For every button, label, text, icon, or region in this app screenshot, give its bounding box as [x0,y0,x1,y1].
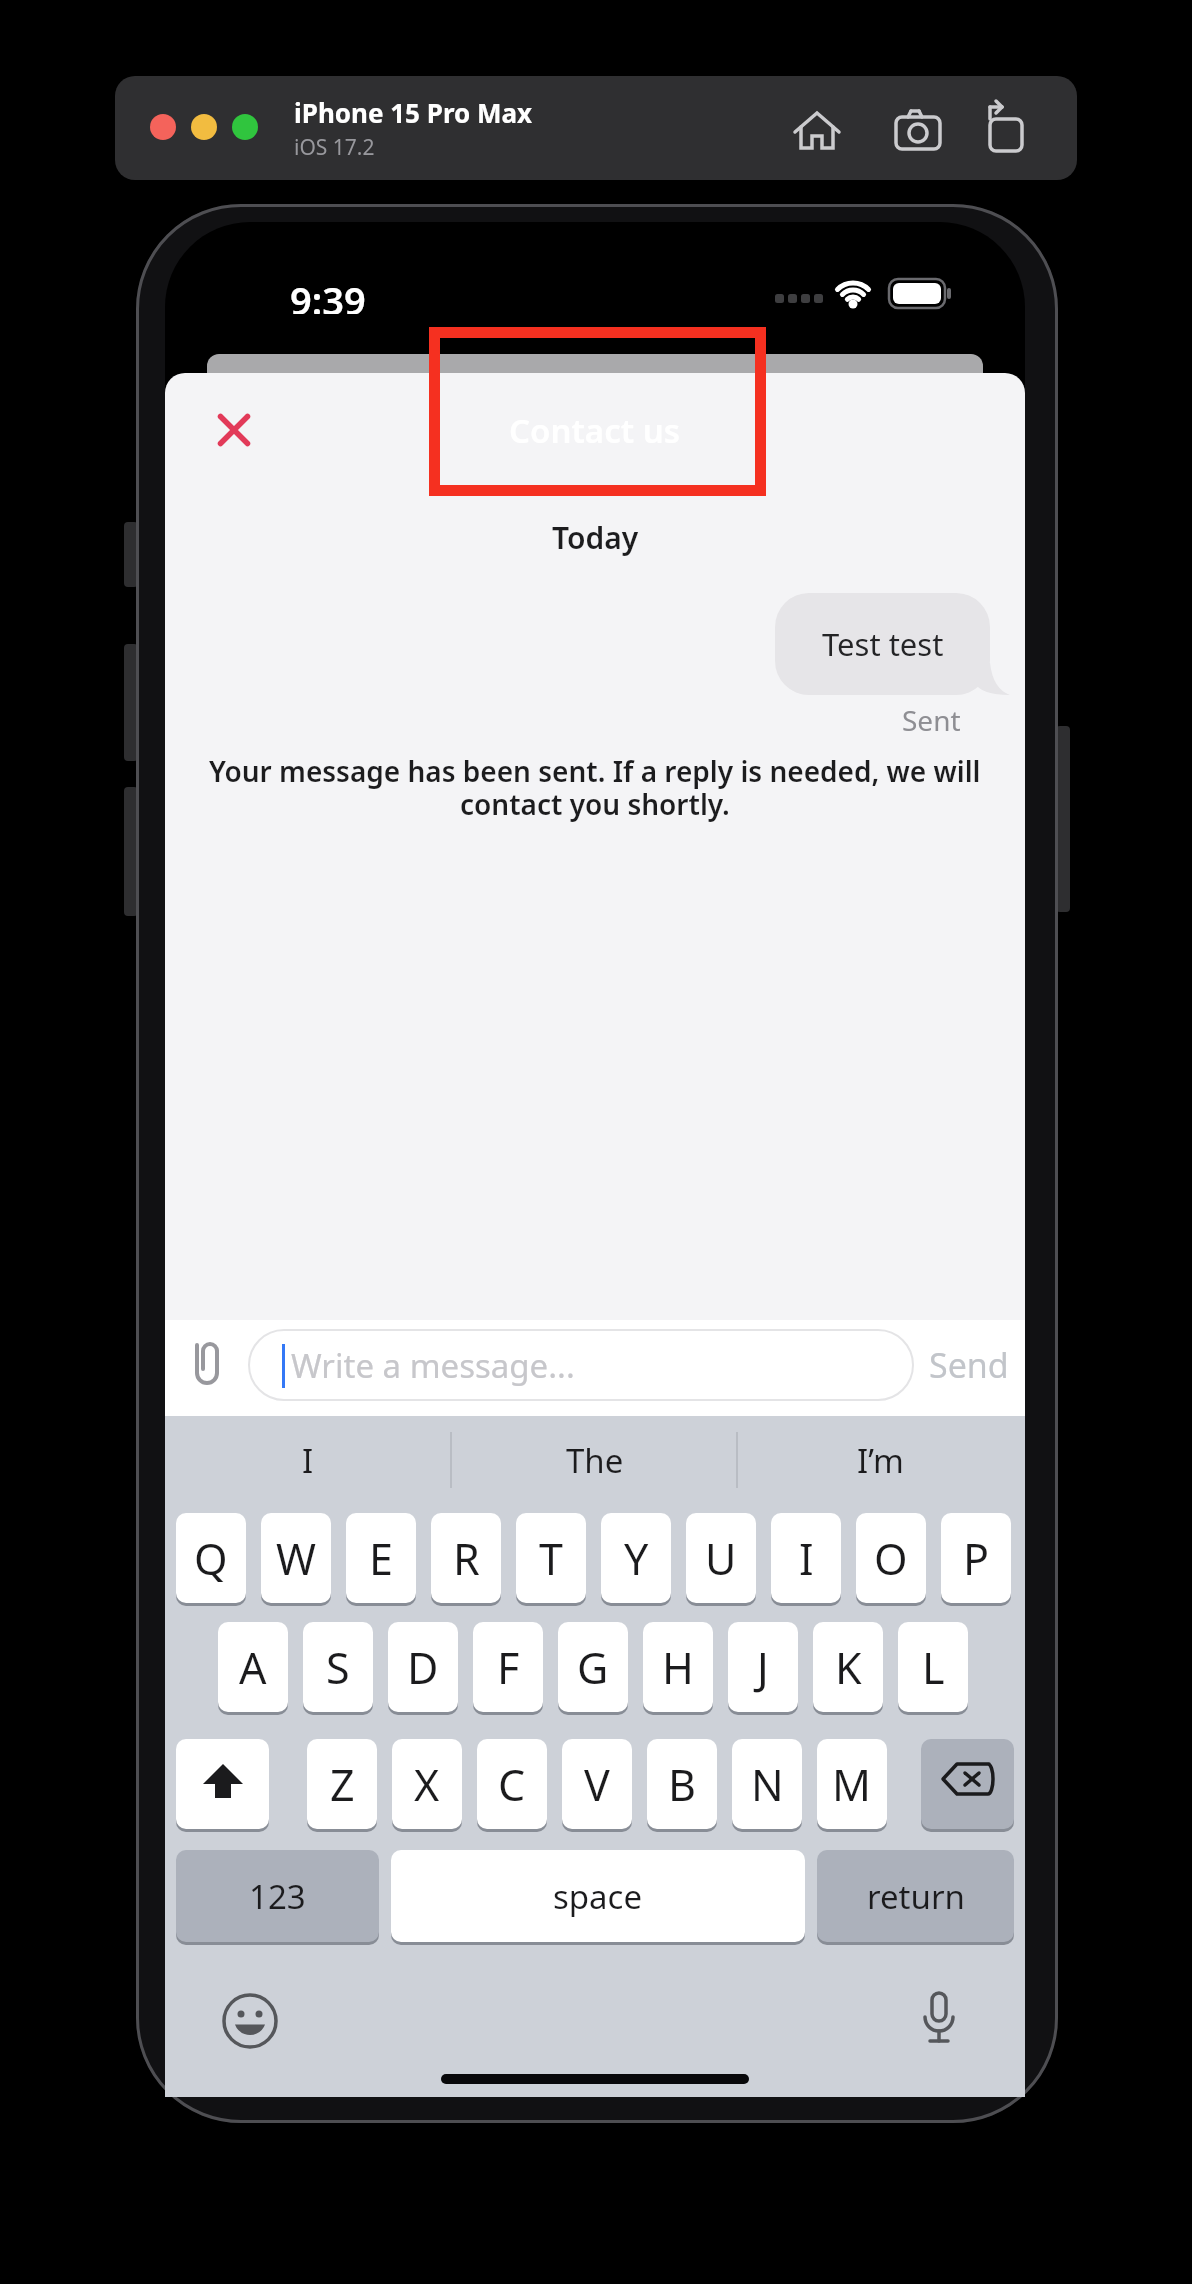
button[interactable]: 123 [176,1850,379,1942]
button[interactable]: E [346,1513,416,1603]
staticText: W [276,1529,316,1588]
staticText: F [497,1638,520,1697]
staticText: iOS 17.2 [294,133,375,162]
button[interactable]: I [771,1513,841,1603]
button[interactable]: O [856,1513,926,1603]
staticText: Contact us [509,408,681,453]
staticText: J [757,1638,769,1697]
button[interactable] [220,1991,280,2051]
button[interactable]: H [643,1622,713,1712]
button[interactable] [909,1989,969,2049]
button[interactable]: A [218,1622,288,1712]
button[interactable] [206,402,262,458]
button[interactable]: L [898,1622,968,1712]
staticText: T [539,1529,563,1588]
staticText: The [566,1438,624,1483]
staticText: P [963,1529,990,1588]
staticText: Test test [822,623,944,665]
staticText: O [874,1529,908,1588]
staticText: S [326,1638,350,1697]
staticText: N [751,1755,784,1814]
staticText: 123 [249,1874,306,1919]
button[interactable]: Y [601,1513,671,1603]
button[interactable]: C [477,1739,547,1829]
button[interactable]: G [558,1622,628,1712]
staticText: Send [929,1342,1009,1388]
staticText: I [302,1438,314,1483]
button[interactable]: B [647,1739,717,1829]
button[interactable]: T [516,1513,586,1603]
button[interactable]: Send [165,373,285,429]
staticText: G [577,1638,609,1697]
button[interactable]: U [686,1513,756,1603]
staticText: M [832,1755,872,1814]
staticText: return [867,1874,965,1919]
staticText: B [668,1755,696,1814]
staticText: R [453,1529,480,1588]
button[interactable]: R [431,1513,501,1603]
staticText: Your message has been sent. If a reply i… [209,752,981,790]
button[interactable]: J [728,1622,798,1712]
button[interactable]: Write a message... [248,1329,914,1401]
button[interactable]: F [473,1622,543,1712]
staticText: U [705,1529,737,1588]
staticText: contact you shortly. [460,785,730,823]
staticText: K [835,1638,862,1697]
button[interactable] [176,1739,269,1829]
staticText: I [799,1529,814,1588]
button[interactable]: The [165,1416,355,1472]
staticText: space [553,1874,643,1919]
button[interactable]: S [303,1622,373,1712]
button[interactable]: X [392,1739,462,1829]
staticText: I’m [857,1438,904,1483]
staticText: C [498,1755,526,1814]
staticText: L [922,1638,945,1697]
button[interactable]: I’m [165,1416,355,1472]
button[interactable]: D [388,1622,458,1712]
button[interactable]: V [562,1739,632,1829]
staticText: V [584,1755,610,1814]
button[interactable]: K [813,1622,883,1712]
button[interactable]: Z [307,1739,377,1829]
staticText: H [662,1638,694,1697]
staticText: 9:39 [290,274,366,314]
button[interactable]: P [941,1513,1011,1603]
button[interactable]: N [732,1739,802,1829]
button[interactable]: I [165,1416,355,1472]
staticText: iPhone 15 Pro Max [294,95,533,130]
staticText: X [414,1755,440,1814]
staticText: Sent [902,701,961,739]
staticText: E [369,1529,393,1588]
staticText: A [239,1638,267,1697]
button[interactable]: return [817,1850,1014,1942]
staticText: Today [552,517,639,558]
staticText: Z [330,1755,355,1814]
staticText: Write a message... [291,1343,575,1388]
button[interactable]: M [817,1739,887,1829]
staticText: Y [624,1529,649,1588]
staticText: Q [194,1529,228,1588]
button[interactable] [921,1739,1014,1829]
staticText: D [407,1638,439,1697]
button[interactable]: W [261,1513,331,1603]
button[interactable]: Q [176,1513,246,1603]
button[interactable]: space [391,1850,805,1942]
